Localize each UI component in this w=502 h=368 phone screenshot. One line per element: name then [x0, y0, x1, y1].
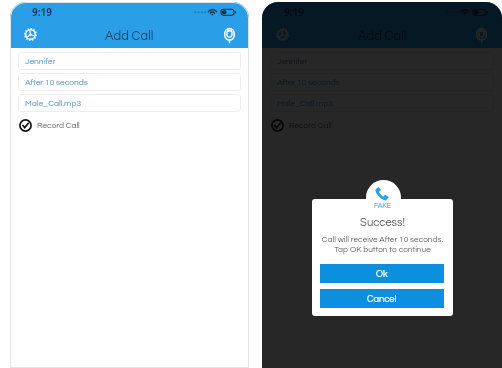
staticText: Call will receive After 10 seconds. Tap … — [312, 235, 453, 253]
button[interactable]: Record Call — [19, 116, 249, 134]
button[interactable]: Jennifer — [18, 52, 241, 70]
staticText: Jennifer — [277, 57, 308, 66]
staticText: Jennifer — [25, 57, 56, 66]
staticText: 9:19 — [32, 5, 52, 19]
staticText: Add Call — [358, 29, 407, 42]
staticText: Add Call — [105, 29, 154, 42]
button[interactable]: Record voice — [470, 24, 492, 46]
staticText: Success! — [360, 217, 405, 229]
button[interactable]: Record voice — [218, 24, 240, 46]
staticText: Record Call — [289, 121, 332, 130]
button[interactable]: Male_Call.mp3 — [18, 94, 241, 112]
staticText: After 10 seconds — [25, 78, 88, 87]
staticText: Ok — [376, 269, 388, 279]
staticText: Cancel — [367, 294, 397, 304]
button[interactable]: After 10 seconds — [18, 73, 241, 91]
staticText: Male_Call.mp3 — [277, 99, 333, 108]
button[interactable]: Cancel — [320, 289, 444, 308]
button[interactable]: Ok — [320, 264, 444, 283]
staticText: 9:19 — [284, 5, 304, 19]
button[interactable]: Settings — [271, 23, 293, 45]
staticText: Male_Call.mp3 — [25, 99, 81, 108]
staticText: After 10 seconds — [277, 78, 340, 87]
button[interactable]: Record Call — [271, 116, 502, 134]
button[interactable]: Settings — [19, 23, 41, 45]
staticText: Record Call — [37, 121, 80, 130]
staticText: FAKE — [374, 202, 392, 209]
